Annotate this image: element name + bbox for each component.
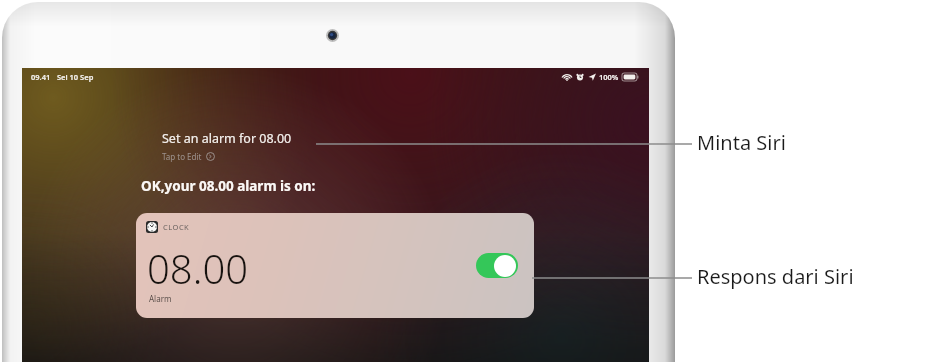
button[interactable]: Tap to Edit bbox=[162, 151, 215, 162]
staticText: Sel 10 Sep bbox=[57, 72, 94, 82]
button[interactable]: CLOCK bbox=[136, 213, 534, 318]
staticText: Respons dari Siri bbox=[697, 263, 854, 290]
staticText: Set an alarm for 08.00 bbox=[162, 130, 292, 147]
staticText: CLOCK bbox=[163, 222, 190, 232]
staticText: Tap to Edit bbox=[162, 151, 202, 162]
staticText: 100% bbox=[599, 72, 619, 82]
staticText: Minta Siri bbox=[697, 129, 786, 156]
staticText: 09.41 bbox=[31, 72, 51, 82]
staticText: Alarm bbox=[149, 293, 172, 304]
button[interactable]: Alarm enabled toggle bbox=[476, 253, 518, 278]
staticText: 08.00 bbox=[147, 241, 249, 295]
staticText: OK,your 08.00 alarm is on: bbox=[141, 177, 316, 195]
